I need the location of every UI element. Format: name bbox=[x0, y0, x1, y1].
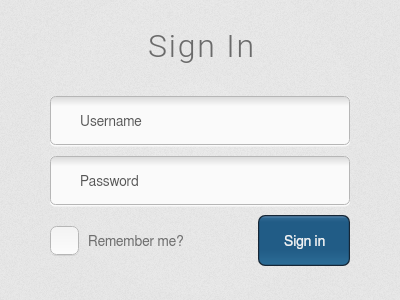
button[interactable]: Remember me? bbox=[88, 226, 190, 255]
button[interactable]: Password bbox=[50, 156, 350, 205]
staticText: Sign In bbox=[2, 27, 400, 300]
staticText: Username bbox=[80, 115, 142, 129]
staticText: Sign in bbox=[284, 235, 326, 249]
staticText: Password bbox=[80, 175, 139, 189]
button[interactable]: Username bbox=[50, 96, 350, 145]
button[interactable]: Sign in bbox=[258, 215, 350, 266]
staticText: Remember me? bbox=[88, 235, 184, 249]
button[interactable]: Remember me checkbox bbox=[50, 226, 79, 255]
